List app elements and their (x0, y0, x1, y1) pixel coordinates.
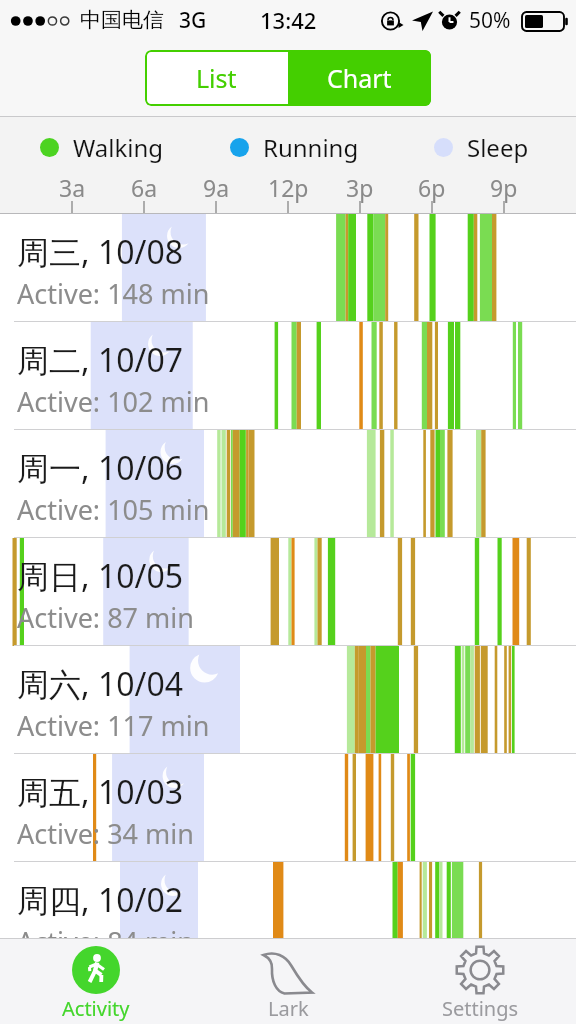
staticText: Active: 102 min (17, 383, 210, 420)
staticText: 6p (418, 172, 446, 203)
button[interactable]: Activity (0, 939, 192, 1024)
button[interactable]: Chart (288, 50, 431, 106)
staticText: 周三, 10/08 (17, 230, 184, 274)
staticText: 周一, 10/06 (17, 446, 184, 490)
button[interactable]: 周一, 10/06 (0, 430, 576, 538)
button[interactable]: 周二, 10/07 (0, 322, 576, 430)
button[interactable]: 周五, 10/03 (0, 754, 576, 862)
staticText: 周日, 10/05 (17, 554, 184, 598)
staticText: 13:42 (260, 5, 317, 35)
staticText: Settings (442, 995, 519, 1022)
staticText: Active: 34 min (17, 815, 194, 852)
staticText: 周二, 10/07 (17, 338, 184, 382)
button[interactable]: 周日, 10/05 (0, 538, 576, 646)
staticText: 周六, 10/04 (17, 662, 184, 706)
staticText: 9a (203, 172, 230, 203)
staticText: Active: 148 min (17, 275, 210, 312)
staticText: 周四, 10/02 (17, 878, 184, 922)
staticText: Lark (268, 995, 309, 1022)
staticText: Sleep (467, 131, 529, 164)
staticText: 9p (490, 172, 518, 203)
button[interactable]: Lark (192, 939, 384, 1024)
button[interactable]: List (145, 50, 288, 106)
staticText: Chart (327, 61, 392, 95)
staticText: Walking (73, 131, 164, 164)
staticText: 50% (469, 6, 511, 35)
staticText: 6a (131, 172, 158, 203)
staticText: Active: 84 min (17, 923, 194, 938)
button[interactable]: 周六, 10/04 (0, 646, 576, 754)
staticText: Active: 105 min (17, 491, 210, 528)
staticText: 3p (346, 172, 374, 203)
button[interactable]: 周四, 10/02 (0, 862, 576, 938)
staticText: List (196, 61, 237, 95)
staticText: 3G (179, 6, 207, 35)
staticText: 12p (268, 172, 309, 203)
button[interactable]: Settings (384, 939, 576, 1024)
staticText: Running (263, 131, 359, 164)
staticText: 中国电信 (80, 7, 164, 33)
staticText: 周五, 10/03 (17, 770, 184, 814)
staticText: 3a (59, 172, 86, 203)
staticText: Active: 87 min (17, 599, 194, 636)
staticText: Active: 117 min (17, 707, 210, 744)
button[interactable]: 周三, 10/08 (0, 214, 576, 322)
staticText: Activity (62, 995, 130, 1022)
